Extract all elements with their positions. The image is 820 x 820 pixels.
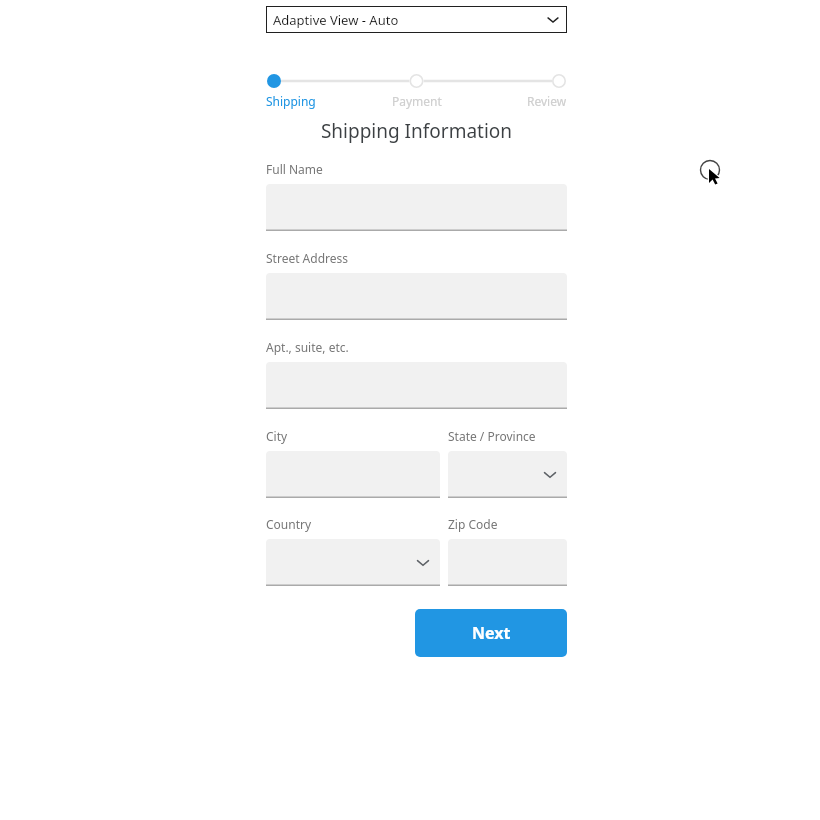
staticText: Zip Code bbox=[448, 516, 498, 532]
button[interactable]: Next bbox=[415, 609, 567, 657]
staticText: Adaptive View - Auto bbox=[273, 11, 399, 29]
button[interactable]: Adaptive View - Auto bbox=[266, 6, 567, 33]
staticText: Payment bbox=[392, 93, 442, 109]
staticText: Apt., suite, etc. bbox=[266, 339, 349, 355]
staticText: Street Address bbox=[266, 250, 349, 266]
button[interactable]: City bbox=[266, 451, 440, 498]
staticText: State / Province bbox=[448, 428, 536, 444]
staticText: Review bbox=[527, 93, 567, 109]
staticText: Full Name bbox=[266, 161, 323, 177]
button[interactable]: State or Province bbox=[448, 451, 567, 498]
staticText: Country bbox=[266, 516, 312, 532]
button[interactable]: Zip Code bbox=[448, 539, 567, 586]
button[interactable]: Apt suite etc bbox=[266, 362, 567, 409]
button[interactable]: Country bbox=[266, 539, 440, 586]
staticText: Shipping Information bbox=[266, 118, 567, 144]
button[interactable]: Street Address bbox=[266, 273, 567, 320]
button[interactable]: Full Name bbox=[266, 184, 567, 231]
staticText: City bbox=[266, 428, 288, 444]
staticText: Shipping bbox=[266, 93, 316, 109]
staticText: Next bbox=[472, 622, 511, 644]
